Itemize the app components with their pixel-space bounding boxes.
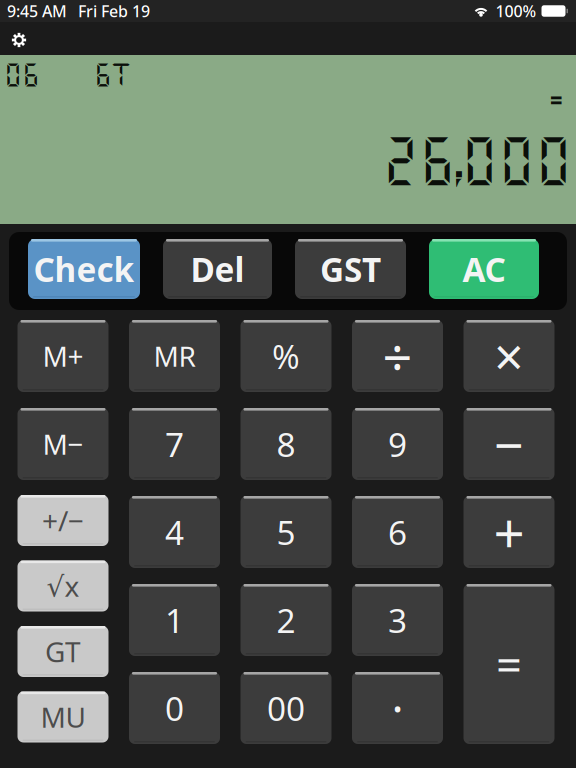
staticText: 3 <box>388 598 407 642</box>
button[interactable]: M+ <box>17 320 108 392</box>
button[interactable]: 7 <box>129 408 220 480</box>
staticText: MU <box>40 698 85 736</box>
staticText: √x <box>46 567 79 605</box>
button[interactable]: % <box>240 320 331 392</box>
staticText: 26,000 <box>382 130 572 190</box>
staticText: 2 <box>276 598 295 642</box>
staticText: 1 <box>165 598 184 642</box>
button[interactable]: GT <box>17 626 108 677</box>
button[interactable]: ÷ <box>352 320 443 392</box>
staticText: +/− <box>42 502 84 539</box>
button[interactable]: − <box>463 408 554 480</box>
staticText: Fri Feb 19 <box>78 0 150 22</box>
button[interactable]: MU <box>17 691 108 742</box>
button[interactable]: Del <box>163 239 272 299</box>
button[interactable]: Check <box>28 239 140 299</box>
button[interactable]: 5 <box>240 496 331 568</box>
staticText: 7 <box>165 422 184 466</box>
button[interactable]: + <box>463 496 554 568</box>
button[interactable]: AC <box>429 239 539 299</box>
button[interactable]: M− <box>17 408 108 480</box>
staticText: 5 <box>276 510 295 554</box>
button[interactable]: Settings <box>0 25 39 55</box>
button[interactable]: 9 <box>352 408 443 480</box>
button[interactable]: +/− <box>17 495 108 546</box>
button[interactable]: 4 <box>129 496 220 568</box>
button[interactable]: 8 <box>240 408 331 480</box>
staticText: + <box>493 496 524 568</box>
staticText: 8 <box>276 422 295 466</box>
staticText: · <box>391 678 403 738</box>
button[interactable]: MR <box>129 320 220 392</box>
staticText: GT <box>94 59 130 89</box>
button[interactable]: √x <box>17 560 108 611</box>
staticText: 9 <box>388 422 407 466</box>
staticText: MR <box>153 337 195 375</box>
button[interactable]: 3 <box>352 584 443 656</box>
button[interactable]: 6 <box>352 496 443 568</box>
staticText: 9:45 AM <box>7 0 67 22</box>
staticText: 00 <box>267 686 305 730</box>
staticText: 0 <box>165 686 184 730</box>
staticText: − <box>494 409 524 479</box>
button[interactable]: = <box>463 584 554 744</box>
staticText: M− <box>42 425 83 463</box>
staticText: = <box>496 634 522 694</box>
button[interactable]: 1 <box>129 584 220 656</box>
staticText: % <box>272 334 300 378</box>
staticText: 4 <box>165 510 184 554</box>
button[interactable]: 0 <box>129 672 220 744</box>
button[interactable]: × <box>463 320 554 392</box>
button[interactable]: 00 <box>240 672 331 744</box>
staticText: × <box>494 321 524 391</box>
staticText: Del <box>190 247 244 291</box>
staticText: GST <box>320 247 381 291</box>
button[interactable]: 2 <box>240 584 331 656</box>
staticText: 06 <box>4 59 40 89</box>
staticText: 100% <box>495 0 536 22</box>
staticText: = <box>550 86 563 114</box>
staticText: ÷ <box>382 321 412 391</box>
button[interactable]: · <box>352 672 443 744</box>
staticText: Check <box>33 247 134 291</box>
staticText: 6 <box>388 510 407 554</box>
staticText: GT <box>45 633 81 670</box>
button[interactable]: GST <box>295 239 406 299</box>
staticText: M+ <box>42 337 83 375</box>
staticText: AC <box>462 247 505 291</box>
